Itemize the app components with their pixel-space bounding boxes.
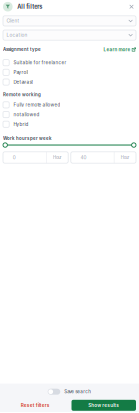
button[interactable]: not allowed (3, 110, 136, 119)
staticText: All filters (17, 3, 42, 10)
staticText: 40 (81, 155, 87, 160)
staticText: Work hours per week (3, 136, 52, 141)
staticText: not allowed (13, 112, 39, 117)
staticText: Assignment type (3, 47, 41, 52)
staticText: Detavast (13, 79, 32, 85)
staticText: Remote working (3, 92, 41, 97)
button[interactable]: Save search (48, 389, 91, 395)
button[interactable]: Hybrid (3, 119, 136, 129)
staticText: Learn more (103, 47, 130, 52)
staticText: Reset filters (21, 402, 50, 408)
staticText: Hybrid (13, 121, 28, 127)
button[interactable]: Reset filters (3, 400, 67, 411)
staticText: Suitable for freelancer (13, 60, 66, 65)
button[interactable]: Fully remote allowed (3, 100, 136, 110)
staticText: Show results (88, 402, 119, 408)
staticText: Hour (53, 155, 62, 160)
staticText: 0 (13, 155, 16, 160)
button[interactable]: Payroll (3, 67, 136, 77)
button[interactable]: Show results (71, 400, 136, 411)
staticText: Hour (121, 155, 130, 160)
button[interactable]: Detavast (3, 77, 136, 87)
button[interactable]: Learn more (103, 47, 136, 52)
button[interactable]: Close (127, 2, 136, 11)
button[interactable]: Suitable for freelancer (3, 58, 136, 67)
staticText: Client (6, 18, 19, 24)
staticText: Save search (64, 389, 91, 394)
staticText: Location (6, 32, 27, 38)
button[interactable]: Client (3, 16, 136, 26)
staticText: Fully remote allowed (13, 102, 60, 108)
staticText: Payroll (13, 70, 28, 75)
button[interactable]: Location (3, 30, 136, 40)
